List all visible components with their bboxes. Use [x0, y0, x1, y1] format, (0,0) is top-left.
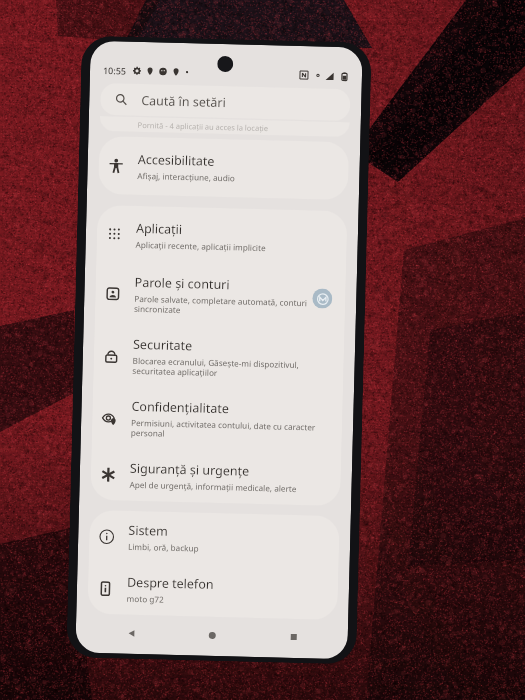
- staticText: Aplicații recente, aplicații implicite: [135, 239, 266, 253]
- button[interactable]: Despre telefon: [87, 562, 338, 620]
- button[interactable]: Parole și conturi: [95, 262, 346, 330]
- button[interactable]: Accesibilitate: [98, 136, 349, 200]
- staticText: Siguranță și urgențe: [130, 460, 250, 480]
- button[interactable]: Caută în setări: [100, 83, 351, 121]
- staticText: 10:55: [103, 64, 127, 77]
- staticText: moto g72: [126, 593, 165, 605]
- button[interactable]: Siguranță și urgențe: [90, 448, 341, 506]
- staticText: Parole salvate, completare automată, con…: [134, 293, 312, 319]
- button[interactable]: Home: [171, 619, 253, 651]
- staticText: Pornită - 4 aplicații au acces la locați…: [137, 120, 269, 133]
- staticText: Apel de urgență, informații medicale, al…: [129, 479, 298, 494]
- staticText: Despre telefon: [127, 574, 214, 593]
- staticText: Parole și conturi: [134, 274, 230, 293]
- staticText: Aplicații: [136, 220, 183, 238]
- staticText: Permisiuni, activitatea contului, date c…: [131, 417, 334, 444]
- button[interactable]: Sistem: [89, 510, 340, 568]
- staticText: Sistem: [128, 522, 169, 540]
- button[interactable]: Back: [89, 617, 172, 649]
- staticText: Blocarea ecranului, Găsește-mi dispoziti…: [132, 355, 336, 382]
- staticText: Afișaj, interacțiune, audio: [137, 170, 235, 183]
- button[interactable]: Confidențialitate: [91, 386, 343, 454]
- staticText: Limbi, oră, backup: [128, 541, 199, 554]
- button[interactable]: Securitate: [93, 324, 345, 392]
- button[interactable]: Recents: [252, 621, 334, 653]
- staticText: Confidențialitate: [131, 398, 230, 417]
- staticText: Securitate: [133, 336, 193, 354]
- button[interactable]: Aplicații: [96, 205, 348, 268]
- staticText: Accesibilitate: [138, 151, 215, 170]
- staticText: Caută în setări: [141, 92, 226, 111]
